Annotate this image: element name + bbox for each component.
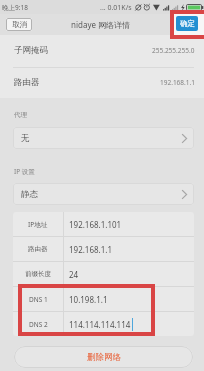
button[interactable]: 取消 [6,18,32,31]
button[interactable]: DNS 2 [13,312,194,336]
staticText: 删除网络 [87,352,121,363]
staticText: 路由器 [14,77,40,88]
staticText: 子网掩码 [14,45,48,56]
staticText: 晚上9:18 [2,3,28,12]
staticText: 无 [21,133,30,144]
staticText: 确定 [180,19,195,28]
button[interactable]: 子网掩码 [0,35,204,66]
button[interactable]: 前缀长度 [13,262,194,286]
other: Expand [182,134,187,143]
staticText: IP 设置 [14,167,35,176]
staticText: 255.255.255.0 [152,46,195,55]
staticText: 10.198.1.1 [69,294,108,305]
staticText: 代理 [14,111,27,119]
other: Status icons [134,3,204,12]
button[interactable]: 删除网络 [14,346,193,368]
button[interactable]: 无 [13,127,194,149]
staticText: DNS 2 [29,320,48,329]
staticText: DNS 1 [29,295,48,304]
staticText: 114.114.114.114 [69,319,131,330]
button[interactable]: 路由器 [0,67,204,98]
button[interactable]: IP地址 [13,212,194,236]
staticText: 路由器 [28,245,48,253]
button[interactable]: 路由器 [13,237,194,261]
staticText: 24 [69,269,79,280]
staticText: 192.168.1.1 [69,244,113,255]
staticText: 静态 [21,189,38,200]
other: Expand [182,190,187,199]
staticText: 取消 [12,20,27,29]
staticText: 前缀长度 [25,270,51,278]
staticText: IP地址 [28,220,48,229]
staticText: 192.168.1.101 [69,219,122,230]
staticText: nidaye 网络详情 [71,19,131,30]
button[interactable]: DNS 1 [13,287,194,311]
staticText: ... 0.01K/s [100,3,132,13]
button[interactable]: 静态 [13,183,194,205]
button[interactable]: 确定 [176,16,198,31]
staticText: 192.168.1.1 [160,78,195,87]
